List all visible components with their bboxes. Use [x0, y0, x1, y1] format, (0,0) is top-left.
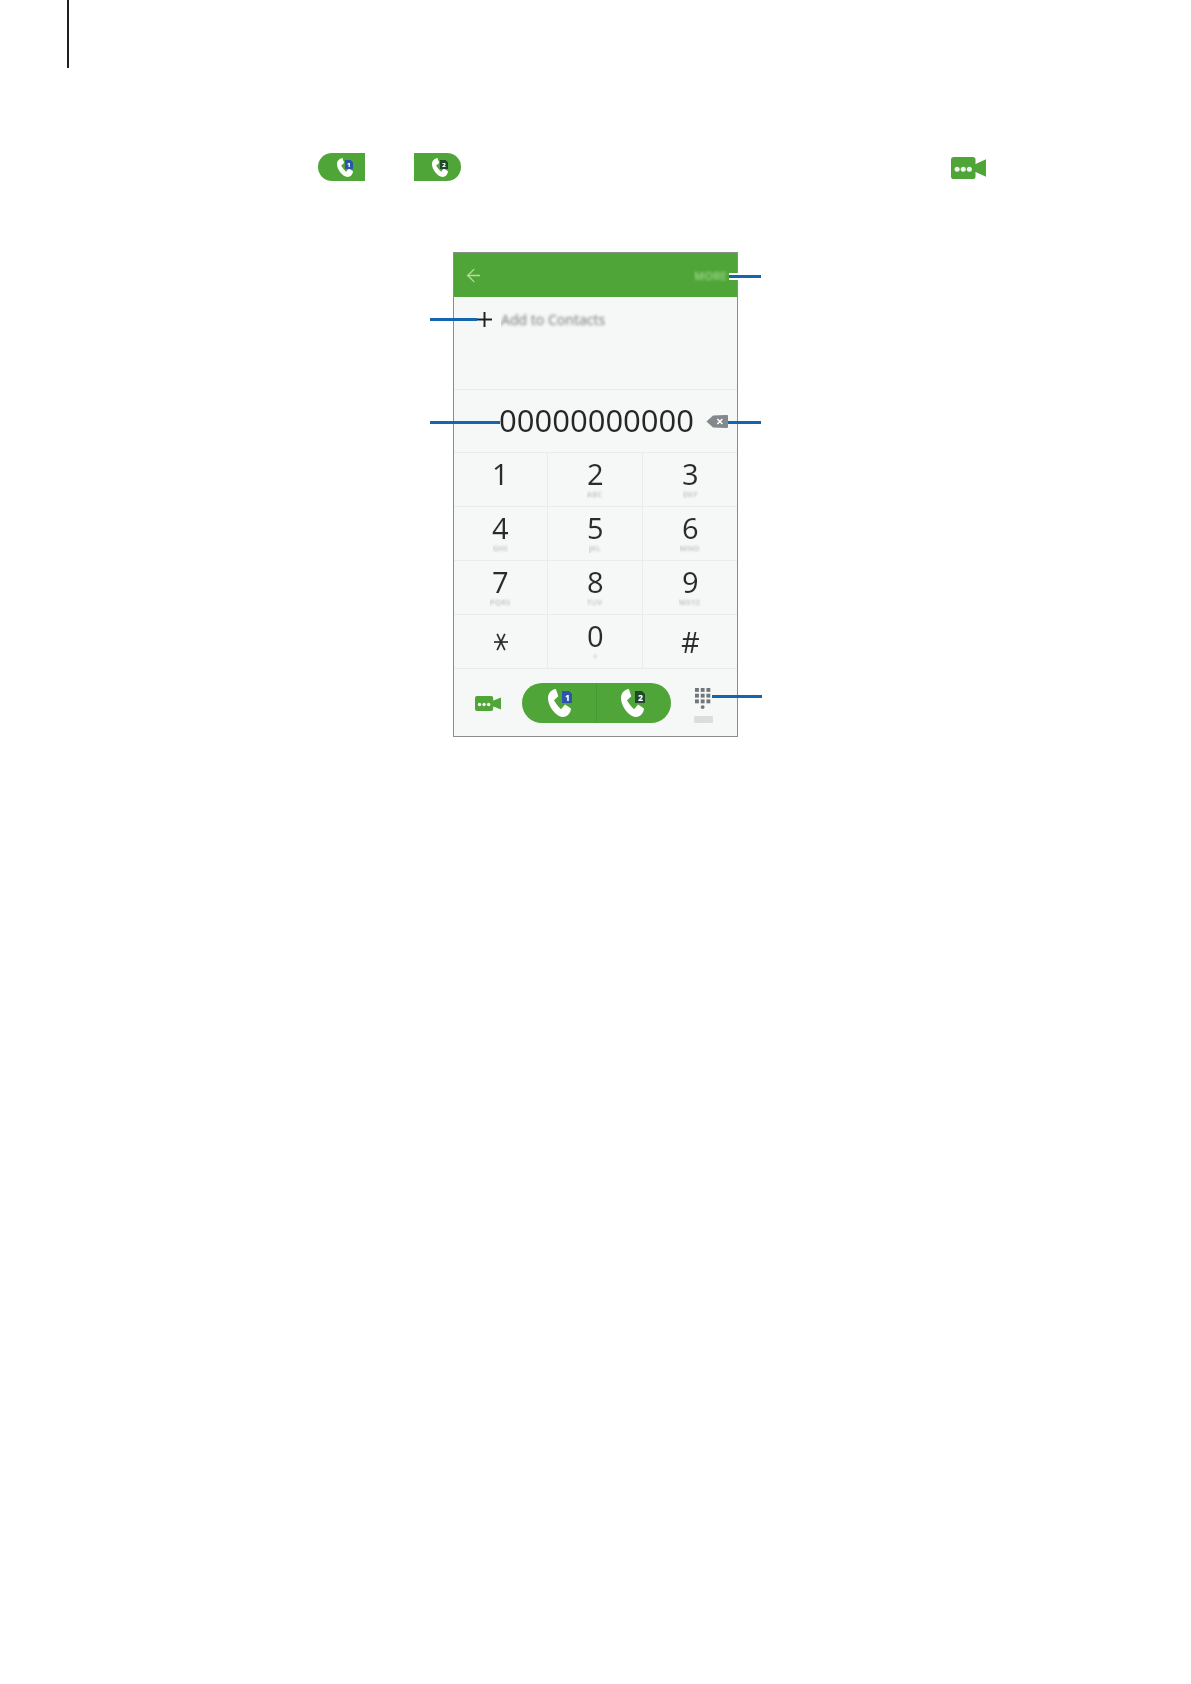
button[interactable]: 3 — [643, 453, 737, 506]
button[interactable]: 0 — [548, 615, 642, 668]
staticText: WXYZ — [679, 597, 701, 607]
staticText: 00000000000 — [499, 399, 695, 441]
staticText: 1 — [565, 692, 570, 703]
staticText: TUV — [587, 597, 603, 607]
button[interactable]: Backspace — [702, 408, 732, 434]
button[interactable]: Call with SIM 1 — [318, 153, 365, 181]
button[interactable]: 4 — [454, 507, 547, 560]
staticText: 2 — [638, 692, 643, 703]
staticText: 0 — [587, 616, 604, 655]
staticText: ABC — [587, 489, 603, 499]
staticText: + — [593, 651, 598, 661]
staticText: 5 — [587, 508, 604, 547]
button[interactable]: 8 — [548, 561, 642, 614]
button[interactable]: Call with SIM 2 — [597, 683, 671, 723]
staticText: 6 — [682, 508, 699, 547]
button[interactable]: Video call — [467, 685, 509, 721]
staticText: 8 — [587, 562, 604, 601]
staticText: JKL — [589, 543, 601, 553]
staticText: 1 — [492, 454, 509, 493]
staticText: GHI — [493, 543, 508, 553]
button[interactable]: Call with SIM 1 — [522, 683, 596, 723]
staticText: 4 — [492, 508, 509, 547]
staticText: # — [681, 622, 700, 661]
button[interactable]: Video call — [951, 157, 986, 179]
button[interactable]: 6 — [643, 507, 737, 560]
staticText: 7 — [492, 562, 509, 601]
button[interactable]: 9 — [643, 561, 737, 614]
staticText: MORE — [694, 268, 728, 283]
button[interactable] — [454, 615, 547, 668]
button[interactable]: # — [643, 615, 737, 668]
button[interactable]: 2 — [548, 453, 642, 506]
staticText: 1 — [347, 161, 351, 169]
button[interactable]: Back — [462, 264, 485, 287]
button[interactable]: Add to Contacts — [454, 297, 737, 389]
staticText: 2 — [587, 454, 604, 493]
staticText: PQRS — [490, 597, 511, 607]
staticText: 2 — [442, 161, 446, 169]
button[interactable]: 7 — [454, 561, 547, 614]
button[interactable]: 5 — [548, 507, 642, 560]
button[interactable]: More options — [694, 268, 728, 283]
staticText: MNO — [680, 543, 700, 553]
staticText: 3 — [682, 454, 699, 493]
button[interactable]: Keypad — [683, 688, 723, 730]
staticText: Add to Contacts — [501, 310, 606, 329]
staticText: DEF — [683, 489, 698, 499]
staticText: 9 — [682, 562, 699, 601]
button[interactable]: Call with SIM 2 — [414, 153, 461, 181]
button[interactable]: 1 — [454, 453, 547, 506]
